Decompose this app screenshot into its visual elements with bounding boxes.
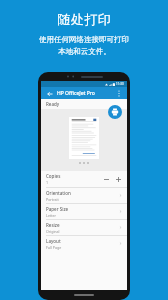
staticText: 使用任何网络连接即可打印 <box>39 35 129 44</box>
staticText: Resize <box>46 222 60 228</box>
button[interactable]: Increase copies <box>114 175 122 183</box>
button[interactable]: Paper Size <box>41 204 127 219</box>
staticText: 11:30 <box>116 82 124 86</box>
staticText: HP OfficeJet Pro <box>57 90 95 97</box>
button[interactable]: Copies <box>41 171 127 187</box>
button[interactable]: Layout <box>41 236 127 251</box>
staticText: 随处打印 <box>57 11 111 27</box>
button[interactable]: Orientation <box>41 188 127 203</box>
staticText: Copies <box>46 173 61 179</box>
button[interactable]: More options <box>114 89 123 98</box>
staticText: Letter <box>46 213 57 218</box>
staticText: Full Page <box>46 245 62 250</box>
staticText: Ready <box>46 101 60 107</box>
button[interactable]: Resize <box>41 220 127 235</box>
button[interactable]: Print <box>108 105 122 119</box>
staticText: Layout <box>46 238 61 244</box>
staticText: Orientation <box>46 190 71 196</box>
button[interactable]: Decrease copies <box>102 175 110 183</box>
staticText: Original <box>46 229 60 234</box>
staticText: Portrait <box>46 197 59 202</box>
staticText: Paper Size <box>46 206 69 212</box>
staticText: 1 <box>46 180 49 185</box>
staticText: 本地和云文件。 <box>58 47 111 56</box>
button[interactable]: Back <box>45 89 54 98</box>
